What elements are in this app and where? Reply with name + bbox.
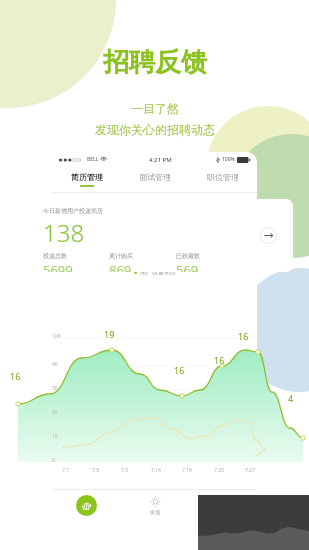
- staticText: 用户投递简历: [140, 268, 176, 276]
- button[interactable]: 简历管理: [52, 167, 121, 192]
- staticText: 职位管理: [207, 172, 239, 182]
- staticText: 4: [288, 392, 294, 404]
- staticText: 今日新增用户投递简历: [43, 207, 103, 215]
- staticText: 近七天: [100, 251, 118, 259]
- staticText: 面试管理: [139, 172, 171, 182]
- staticText: 7.5: [92, 467, 100, 474]
- staticText: 4:21 PM: [149, 156, 172, 164]
- staticText: 569: [176, 261, 199, 272]
- button[interactable]: 招聘: [189, 490, 257, 520]
- staticText: 100%: [222, 156, 235, 163]
- staticText: 100: [52, 333, 61, 340]
- staticText: 0: [52, 457, 55, 464]
- staticText: 7.23: [214, 467, 224, 474]
- button[interactable]: 职位管理: [189, 167, 257, 192]
- button[interactable]: 近七天: [86, 247, 131, 262]
- staticText: BELL: [87, 156, 99, 163]
- staticText: 已收藏数: [176, 252, 200, 260]
- staticText: 16: [10, 370, 21, 382]
- staticText: 20: [52, 409, 58, 416]
- staticText: 30: [52, 385, 58, 392]
- button[interactable]: 首页: [52, 490, 121, 520]
- staticText: 简历管理: [71, 172, 103, 182]
- staticText: 16: [214, 354, 225, 366]
- button[interactable]: 面试管理: [121, 167, 189, 192]
- staticText: 16: [238, 330, 249, 342]
- button[interactable]: 近一个月: [131, 247, 177, 262]
- button[interactable]: 今日新增用户投递简历: [31, 199, 293, 272]
- staticText: 7.14: [151, 467, 161, 474]
- staticText: 一目了然: [131, 101, 179, 116]
- staticText: 7.1: [62, 467, 70, 474]
- button[interactable]: 发现: [121, 490, 189, 520]
- staticText: 招聘反馈: [103, 46, 207, 79]
- button[interactable]: 查看更多: [260, 227, 277, 244]
- staticText: 138: [43, 216, 85, 249]
- staticText: 发现你关心的招聘动态: [95, 122, 215, 137]
- staticText: 16: [174, 364, 185, 376]
- staticText: 近半年: [191, 251, 209, 259]
- staticText: 19: [104, 328, 115, 340]
- staticText: 投递总数: [43, 252, 67, 260]
- staticText: 869: [109, 261, 132, 272]
- staticText: 7.27: [245, 467, 255, 474]
- staticText: 10: [52, 433, 58, 440]
- staticText: 5699: [43, 261, 73, 272]
- staticText: 7.19: [182, 467, 192, 474]
- staticText: 40: [52, 361, 58, 368]
- staticText: 累计购买: [109, 252, 133, 260]
- button[interactable]: 近半年: [177, 247, 223, 262]
- staticText: 7.9: [121, 467, 129, 474]
- staticText: 发现: [150, 509, 160, 515]
